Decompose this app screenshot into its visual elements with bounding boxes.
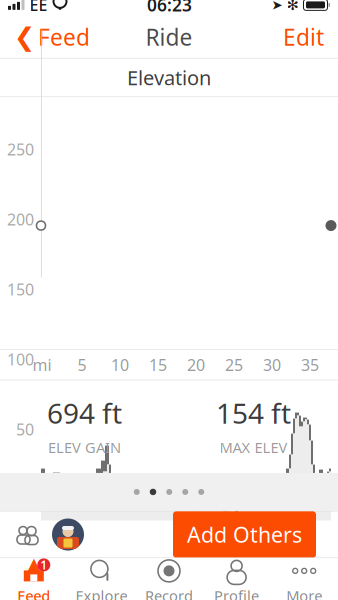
staticText: 20 <box>187 354 205 375</box>
staticText: ELEV GAIN <box>48 437 121 457</box>
staticText: ➤ <box>271 0 282 12</box>
staticText: mi <box>32 354 51 375</box>
staticText: Explore <box>75 586 127 600</box>
button[interactable]: Record <box>135 555 203 600</box>
staticText: 10 <box>111 354 129 375</box>
button[interactable]: ❮ <box>6 18 98 56</box>
staticText: Ride <box>145 22 192 52</box>
button[interactable]: Athlete <box>52 518 84 550</box>
staticText: More <box>286 586 322 600</box>
button[interactable]: Profile <box>203 555 270 600</box>
button[interactable]: Add Others <box>173 511 316 558</box>
staticText: 1 <box>40 557 47 573</box>
staticText: 30 <box>263 354 281 375</box>
button[interactable]: More <box>270 555 338 600</box>
button[interactable]: Explore <box>68 555 135 600</box>
staticText: 200 <box>7 209 34 230</box>
staticText: 25 <box>225 354 243 375</box>
staticText: Add Others <box>187 520 302 549</box>
staticText: 35 <box>301 354 319 375</box>
staticText: Elevation <box>127 64 211 91</box>
staticText: 50 <box>16 419 34 440</box>
staticText: ✻ <box>286 0 298 13</box>
staticText: EE <box>29 0 47 15</box>
staticText: Edit <box>283 22 324 52</box>
staticText: Record <box>145 586 193 600</box>
staticText: 154 ft <box>216 394 291 431</box>
staticText: 250 <box>7 139 34 160</box>
staticText: 06:23 <box>147 0 192 16</box>
staticText: ❮ <box>14 22 35 51</box>
button[interactable]: ▲ <box>0 555 68 600</box>
staticText: 5 <box>77 354 86 375</box>
staticText: Feed <box>17 586 50 600</box>
staticText: Profile <box>214 586 259 600</box>
button[interactable]: Participants <box>12 520 42 548</box>
staticText: 15 <box>149 354 167 375</box>
staticText: Feed <box>38 22 90 52</box>
button[interactable]: Edit <box>275 18 332 56</box>
staticText: 100 <box>7 349 34 370</box>
staticText: 150 <box>7 279 34 300</box>
staticText: ▲ <box>25 552 42 578</box>
staticText: MAX ELEV <box>219 437 287 457</box>
staticText: 694 ft <box>47 394 122 431</box>
